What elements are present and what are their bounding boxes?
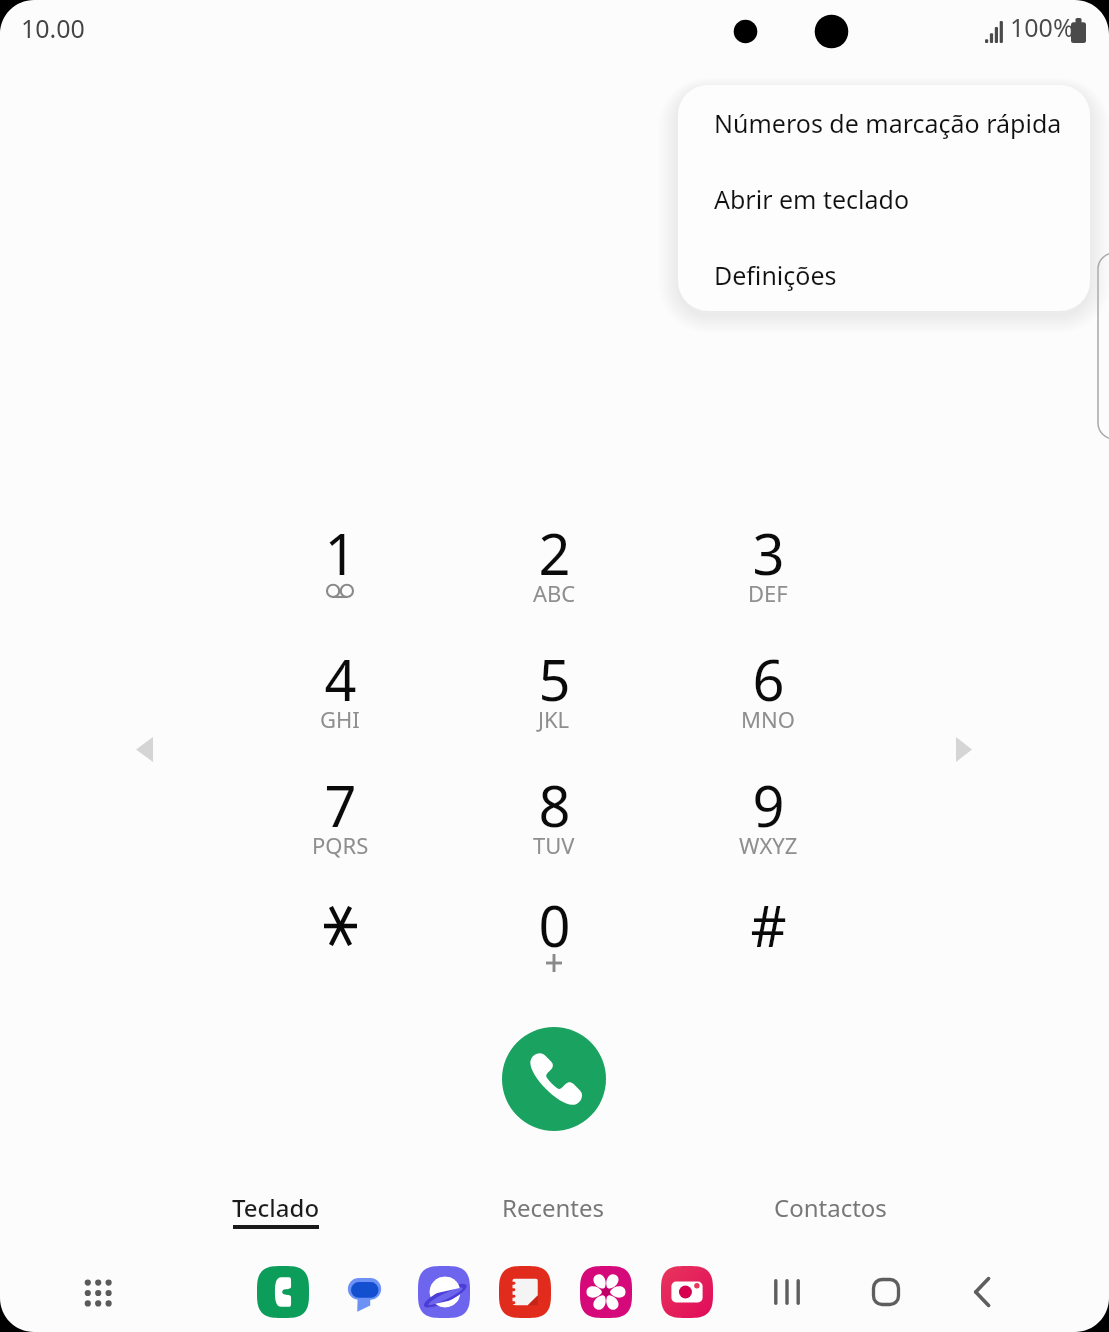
button[interactable]: 3 bbox=[678, 493, 858, 617]
button[interactable]: Recentes bbox=[453, 1186, 653, 1238]
staticText: ABC bbox=[533, 578, 576, 608]
staticText: PQRS bbox=[312, 830, 369, 860]
staticText: 2 bbox=[538, 515, 571, 591]
staticText: 100% bbox=[1010, 10, 1074, 44]
staticText: GHI bbox=[320, 704, 360, 734]
staticText: Definições bbox=[714, 258, 837, 292]
button[interactable]: Teclado bbox=[176, 1186, 376, 1238]
staticText: 9 bbox=[752, 767, 785, 843]
button[interactable]: 7 bbox=[250, 745, 430, 869]
button[interactable]: Contactos bbox=[730, 1186, 930, 1238]
button[interactable]: Gallery bbox=[580, 1266, 632, 1318]
staticText: Contactos bbox=[774, 1191, 887, 1224]
staticText: # bbox=[750, 887, 787, 963]
button[interactable]: 8 bbox=[464, 745, 644, 869]
button[interactable]: All apps bbox=[72, 1268, 124, 1320]
button[interactable]: 5 bbox=[464, 619, 644, 743]
button[interactable]: Messages bbox=[338, 1266, 390, 1318]
staticText: Números de marcação rápida bbox=[714, 106, 1062, 140]
staticText: 0 bbox=[538, 887, 571, 963]
button[interactable]: Samsung Notes bbox=[499, 1266, 551, 1318]
staticText: Recentes bbox=[502, 1191, 605, 1224]
button[interactable]: 6 bbox=[678, 619, 858, 743]
button[interactable]: Internet bbox=[418, 1266, 470, 1318]
button[interactable]: Abrir em teclado bbox=[678, 161, 1090, 237]
button[interactable]: 4 bbox=[250, 619, 430, 743]
button[interactable]: Call bbox=[502, 1027, 606, 1131]
staticText: JKL bbox=[538, 704, 570, 734]
button[interactable] bbox=[250, 865, 430, 989]
button[interactable]: 9 bbox=[678, 745, 858, 869]
staticText: 5 bbox=[538, 641, 571, 717]
button[interactable]: Números de marcação rápida bbox=[678, 85, 1090, 161]
button[interactable]: 1 bbox=[250, 493, 430, 617]
button[interactable]: # bbox=[678, 865, 858, 989]
staticText: TUV bbox=[533, 830, 575, 860]
staticText: 6 bbox=[752, 641, 785, 717]
staticText: 7 bbox=[324, 767, 357, 843]
staticText: 1 bbox=[324, 515, 357, 591]
staticText: 10.00 bbox=[21, 11, 85, 45]
staticText: 8 bbox=[538, 767, 571, 843]
button[interactable]: Recents bbox=[759, 1264, 815, 1320]
staticText: Teclado bbox=[232, 1191, 320, 1224]
staticText: 3 bbox=[752, 515, 785, 591]
staticText: Abrir em teclado bbox=[714, 182, 910, 216]
button[interactable]: Home bbox=[858, 1264, 914, 1320]
staticText: WXYZ bbox=[739, 830, 798, 860]
button[interactable]: 2 bbox=[464, 493, 644, 617]
button[interactable]: 0 bbox=[464, 865, 644, 989]
staticText: 4 bbox=[324, 641, 357, 717]
staticText: MNO bbox=[741, 704, 795, 734]
button[interactable]: Phone bbox=[257, 1266, 309, 1318]
staticText: DEF bbox=[748, 578, 788, 608]
button[interactable]: Back bbox=[955, 1264, 1011, 1320]
button[interactable]: Definições bbox=[678, 237, 1090, 311]
button[interactable]: Camera bbox=[661, 1266, 713, 1318]
